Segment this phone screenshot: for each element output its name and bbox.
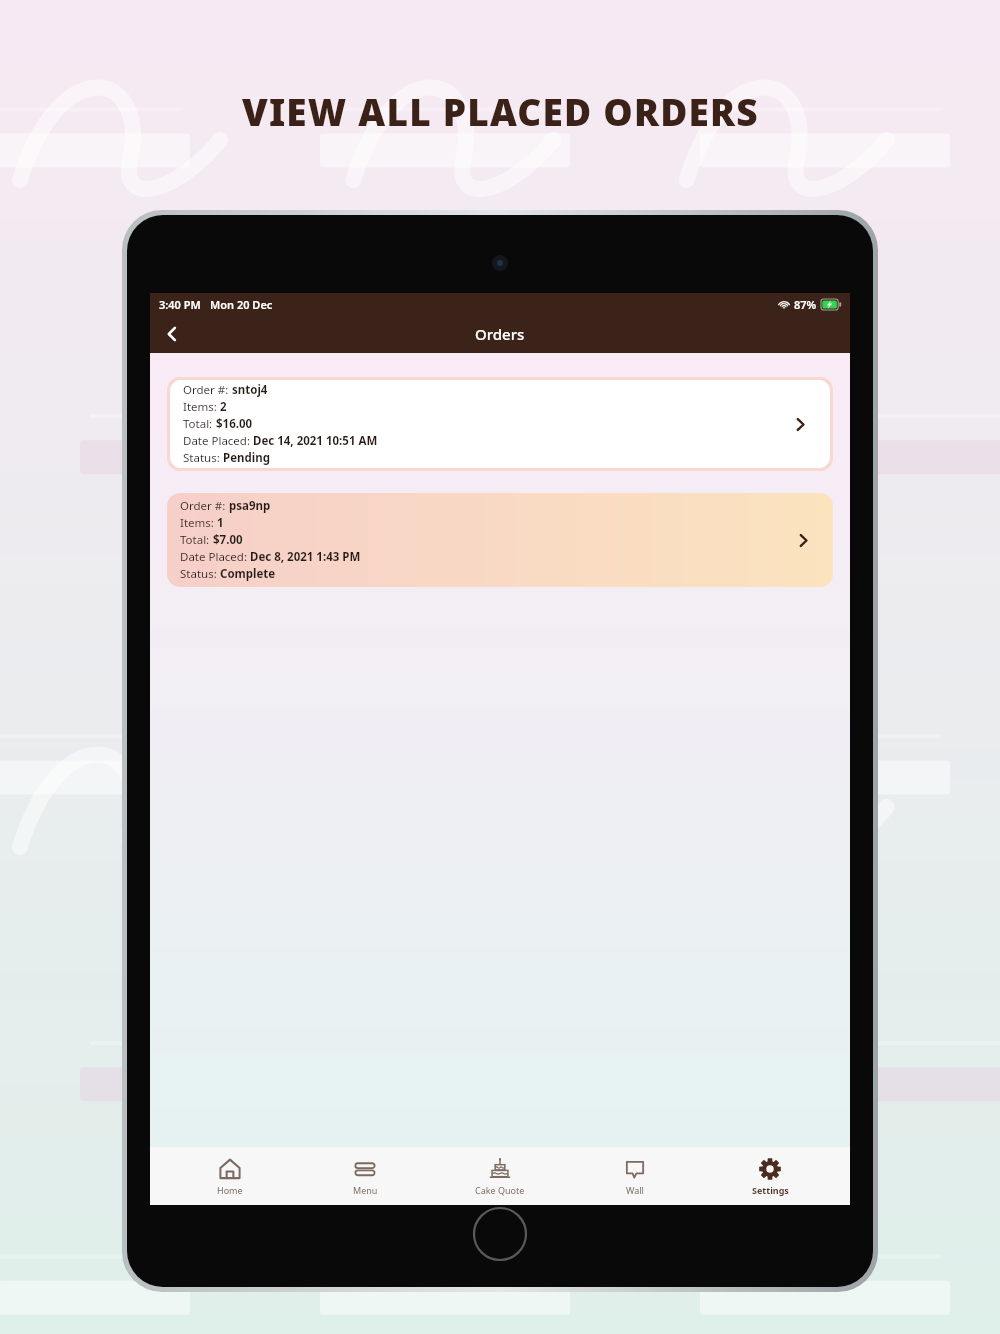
staticText: Wall <box>626 1184 644 1196</box>
staticText: Mon 20 Dec <box>210 297 273 312</box>
staticText: Status: <box>180 566 220 582</box>
button[interactable]: Order #: <box>167 493 833 587</box>
staticText: $16.00 <box>216 416 253 432</box>
staticText: 2 <box>220 399 227 415</box>
staticText: Total: <box>183 416 216 432</box>
staticText: Dec 8, 2021 1:43 PM <box>250 549 361 565</box>
staticText: Date Placed: <box>180 549 250 565</box>
staticText: 1 <box>217 515 224 531</box>
button[interactable]: Wall <box>580 1157 690 1196</box>
staticText: sntoj4 <box>232 382 268 398</box>
staticText: Status: <box>183 450 223 466</box>
staticText: Pending <box>223 450 270 466</box>
button[interactable]: Order #: <box>170 380 830 468</box>
staticText: VIEW ALL PLACED ORDERS <box>242 86 759 136</box>
staticText: Order #: <box>180 498 229 514</box>
staticText: Dec 14, 2021 10:51 AM <box>253 433 378 449</box>
button[interactable]: Back <box>150 315 194 353</box>
staticText: Date Placed: <box>183 433 253 449</box>
staticText: Total: <box>180 532 213 548</box>
staticText: 3:40 PM <box>159 297 201 312</box>
staticText: Settings <box>752 1184 789 1196</box>
button[interactable]: Home <box>175 1157 285 1196</box>
staticText: Orders <box>475 324 525 344</box>
button[interactable]: Settings <box>715 1157 825 1196</box>
staticText: Home <box>217 1184 243 1196</box>
staticText: Items: <box>183 399 220 415</box>
staticText: $7.00 <box>213 532 243 548</box>
staticText: Order #: <box>183 382 232 398</box>
button[interactable]: Menu <box>310 1157 420 1196</box>
staticText: Complete <box>220 566 276 582</box>
staticText: Items: <box>180 515 217 531</box>
staticText: Cake Quote <box>475 1184 525 1196</box>
staticText: Menu <box>353 1184 378 1196</box>
staticText: 87% <box>794 297 817 312</box>
button[interactable]: Cake Quote <box>445 1157 555 1196</box>
staticText: psa9np <box>229 498 271 514</box>
